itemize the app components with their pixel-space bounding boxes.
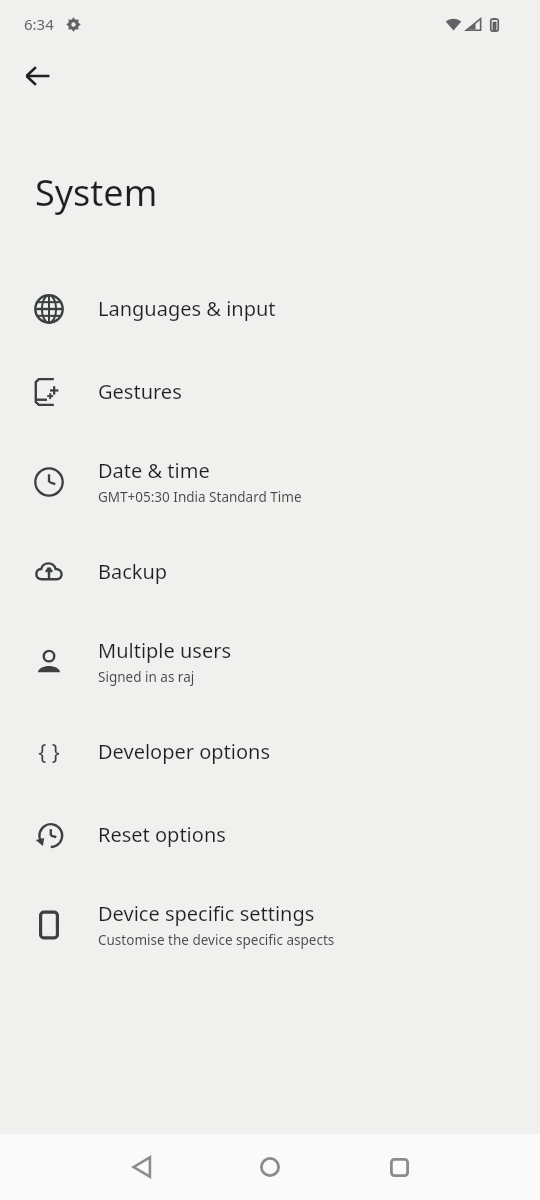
button[interactable]: Home — [243, 1140, 297, 1194]
button[interactable]: Gestures — [0, 350, 540, 433]
button[interactable]: Multiple users — [0, 613, 540, 710]
button[interactable]: Recent apps — [372, 1140, 426, 1194]
staticText: Device specific settings — [98, 900, 315, 927]
staticText: Customise the device specific aspects — [98, 931, 335, 949]
staticText: Developer options — [98, 738, 271, 765]
staticText: Languages & input — [98, 295, 276, 322]
button[interactable]: Date & time — [0, 433, 540, 530]
button[interactable]: Device specific settings — [0, 876, 540, 973]
staticText: Reset options — [98, 821, 226, 848]
staticText: { } — [38, 738, 60, 767]
button[interactable]: Reset options — [0, 793, 540, 876]
staticText: System — [35, 168, 158, 217]
staticText: 6:34 — [24, 14, 54, 34]
staticText: Gestures — [98, 378, 182, 405]
button[interactable]: Back — [115, 1140, 169, 1194]
staticText: Signed in as raj — [98, 668, 195, 686]
staticText: Backup — [98, 558, 168, 585]
button[interactable]: { } — [0, 710, 540, 793]
button[interactable]: Backup — [0, 530, 540, 613]
staticText: GMT+05:30 India Standard Time — [98, 488, 302, 506]
staticText: Date & time — [98, 457, 210, 484]
button[interactable]: Back — [14, 52, 62, 100]
staticText: Multiple users — [98, 637, 232, 664]
button[interactable]: Languages & input — [0, 267, 540, 350]
